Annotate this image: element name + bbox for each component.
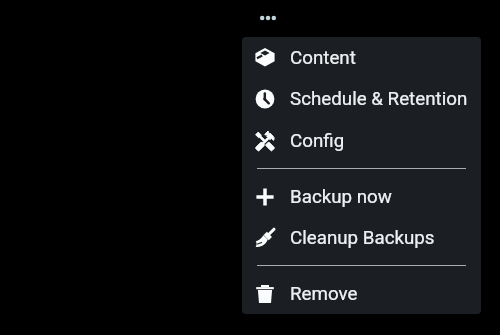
button[interactable]: Backup now	[242, 176, 481, 218]
staticText: Backup now	[290, 186, 392, 208]
staticText: Cleanup Backups	[290, 227, 435, 249]
button[interactable]: Cleanup Backups	[242, 217, 481, 259]
button[interactable]: Config	[242, 120, 481, 162]
button[interactable]: More options	[248, 2, 288, 34]
staticText: Schedule & Retention	[290, 88, 468, 110]
button[interactable]: Remove	[242, 273, 481, 314]
button[interactable]: Schedule & Retention	[242, 78, 481, 120]
staticText: Remove	[290, 283, 358, 305]
staticText: Content	[290, 47, 356, 69]
staticText: Config	[290, 130, 345, 152]
button[interactable]: Content	[242, 37, 481, 79]
